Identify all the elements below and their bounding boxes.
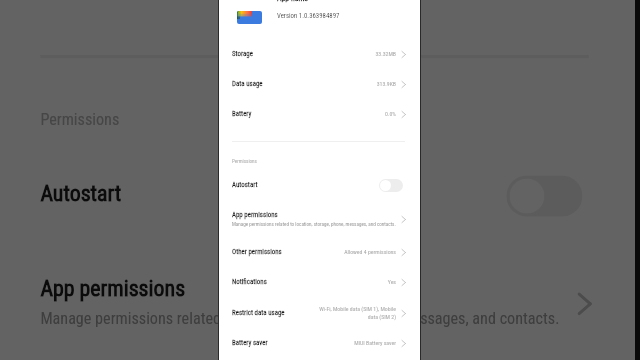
button[interactable]: App permissions: [218, 206, 421, 232]
staticText: App permissions: [40, 277, 186, 302]
staticText: Autostart: [232, 181, 379, 189]
staticText: Yes: [334, 279, 396, 286]
staticText: App permissions: [232, 211, 278, 219]
staticText: Permissions: [40, 109, 120, 128]
staticText: Permissions: [232, 158, 257, 164]
button[interactable]: Battery: [0, 0, 639, 17]
button[interactable]: App permissions: [0, 261, 639, 343]
button[interactable]: Autostart: [218, 170, 421, 200]
staticText: Autostart: [40, 182, 506, 207]
staticText: App name: [277, 0, 309, 3]
button[interactable]: Storage: [218, 39, 421, 69]
staticText: Notifications: [232, 278, 267, 286]
button[interactable]: Data usage: [218, 69, 421, 99]
staticText: 0.0%: [334, 111, 396, 118]
button[interactable]: Toggle Autostart: [506, 175, 582, 217]
staticText: Wi-Fi, Mobile data (SIM 1), Mobile data …: [316, 306, 396, 320]
button[interactable]: Battery: [218, 99, 421, 129]
staticText: Version 1.0.363984897: [277, 12, 340, 20]
staticText: Restrict data usage: [232, 309, 285, 317]
button[interactable]: Battery saver: [218, 328, 421, 358]
button[interactable]: Other permissions: [0, 359, 639, 360]
staticText: Manage permissions related to location, …: [40, 309, 560, 328]
staticText: Other permissions: [232, 248, 282, 256]
staticText: Allowed 4 permissions: [334, 249, 396, 256]
staticText: 33.32MB: [334, 51, 396, 58]
button[interactable]: Restrict data usage: [218, 298, 421, 328]
staticText: MIUI Battery saver: [334, 340, 396, 347]
staticText: Manage permissions related to location, …: [232, 221, 396, 227]
button[interactable]: Autostart: [0, 147, 639, 242]
staticText: Battery: [232, 110, 252, 118]
button[interactable]: Other permissions: [218, 237, 421, 267]
staticText: Battery saver: [232, 339, 268, 347]
staticText: Data usage: [232, 80, 263, 88]
button[interactable]: Toggle Autostart: [379, 179, 403, 192]
staticText: 313.9KB: [334, 81, 396, 88]
staticText: Storage: [232, 50, 253, 58]
button[interactable]: Notifications: [218, 267, 421, 297]
